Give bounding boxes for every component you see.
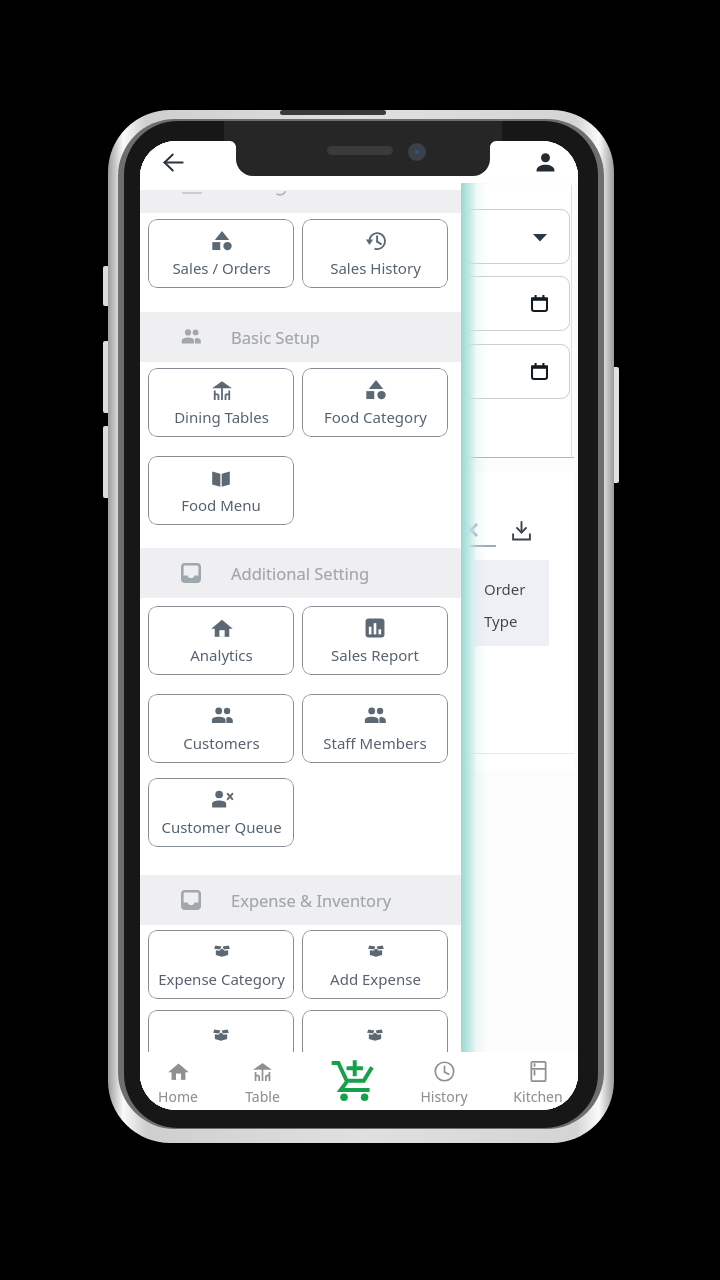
button[interactable]: New Order (314, 1052, 390, 1110)
button[interactable]: Table (224, 1052, 300, 1110)
button[interactable] (148, 1010, 294, 1079)
button[interactable]: Home (140, 1052, 216, 1110)
staticText: Sales History (330, 258, 421, 278)
staticText: Customer Queue (161, 817, 282, 837)
button[interactable]: Food Menu (148, 456, 294, 525)
staticText: Food Category (324, 407, 427, 427)
button[interactable] (302, 1010, 448, 1079)
staticText: Sales / Orders (172, 258, 271, 278)
button[interactable]: Dining Tables (148, 368, 294, 437)
staticText: Type (484, 611, 518, 631)
staticText: Customers (183, 733, 260, 753)
button[interactable]: Back (156, 145, 190, 179)
staticText: Dining Tables (174, 407, 269, 427)
button[interactable]: Basic Setup (140, 312, 461, 362)
button[interactable]: Food Category (302, 368, 448, 437)
button[interactable] (140, 190, 461, 213)
button[interactable]: Sales Report (302, 606, 448, 675)
staticText: Additional Setting (231, 562, 370, 584)
button[interactable]: Add Expense (302, 930, 448, 999)
staticText: Analytics (190, 645, 253, 665)
button[interactable]: Customer Queue (148, 778, 294, 847)
button[interactable]: Kitchen (500, 1052, 576, 1110)
staticText: Expense Category (158, 969, 285, 989)
button[interactable]: Profile (528, 145, 562, 179)
staticText: Order (484, 579, 526, 599)
staticText: Kitchen (513, 1087, 563, 1106)
staticText: Basic Setup (231, 326, 321, 348)
button[interactable]: Expense & Inventory (140, 875, 461, 925)
staticText: Table (245, 1087, 280, 1106)
button[interactable]: Customers (148, 694, 294, 763)
staticText: Home (158, 1087, 198, 1106)
button[interactable]: Expense Category (148, 930, 294, 999)
staticText: Staff Members (323, 733, 427, 753)
button[interactable]: History (406, 1052, 482, 1110)
button[interactable]: Sales / Orders (148, 219, 294, 288)
staticText: Add Expense (330, 969, 421, 989)
staticText: Sales Report (331, 645, 419, 665)
button[interactable]: Additional Setting (140, 548, 461, 598)
button[interactable]: Staff Members (302, 694, 448, 763)
button[interactable]: Analytics (148, 606, 294, 675)
staticText: Expense & Inventory (231, 889, 392, 911)
button[interactable]: Sales History (302, 219, 448, 288)
staticText: History (420, 1087, 468, 1106)
staticText: Food Menu (181, 495, 261, 515)
